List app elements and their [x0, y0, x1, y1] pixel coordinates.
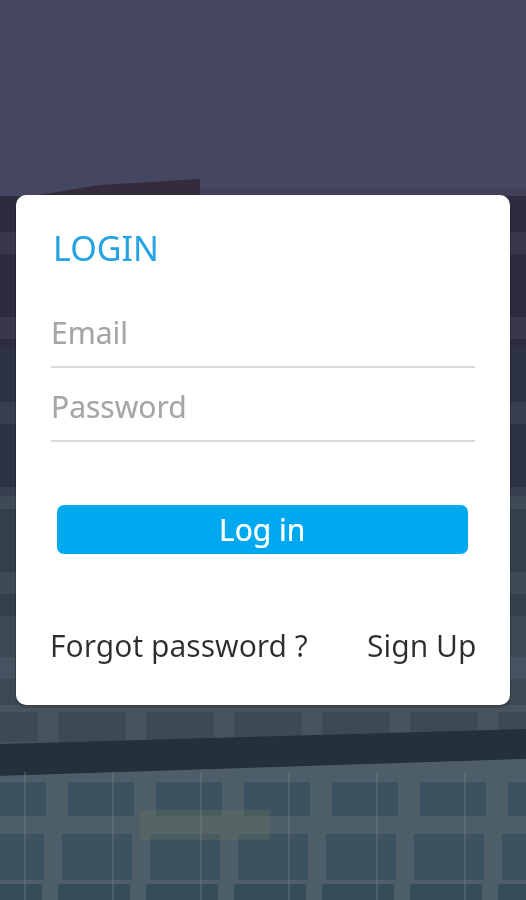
staticText: Password [51, 386, 187, 427]
button[interactable]: Email [51, 303, 475, 361]
staticText: LOGIN [53, 225, 159, 271]
staticText: Log in [219, 509, 306, 550]
staticText: Forgot password ? [50, 625, 308, 666]
button[interactable]: Password [51, 377, 475, 435]
button[interactable]: Forgot password ? [46, 620, 356, 670]
staticText: Email [51, 312, 129, 353]
staticText: Sign Up [367, 625, 477, 666]
button[interactable]: Sign Up [361, 620, 486, 670]
button[interactable]: Log in [57, 505, 468, 554]
